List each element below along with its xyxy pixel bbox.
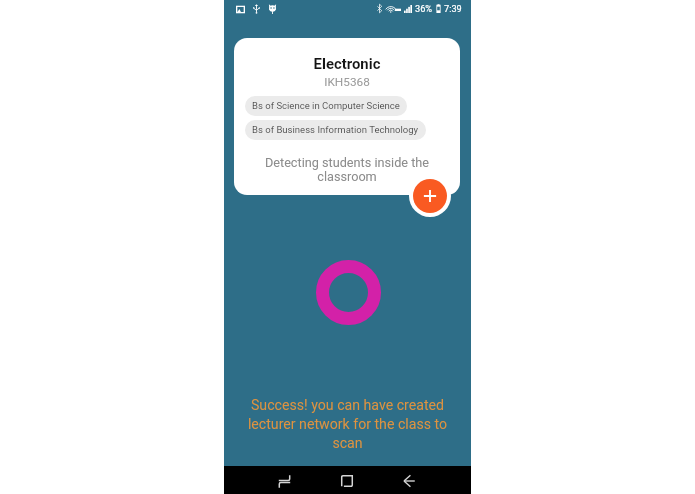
staticText: Detecting students inside the classroom [257, 155, 437, 185]
staticText: Bs of Business Information Technology [252, 124, 419, 135]
staticText: 7:39 [444, 3, 462, 14]
staticText: Bs of Science in Computer Science [252, 100, 400, 111]
staticText: IKH5368 [234, 75, 460, 89]
button[interactable]: Recents [270, 467, 298, 494]
staticText: Success! you can have created lecturer n… [238, 397, 457, 451]
button[interactable]: Home [333, 467, 361, 494]
button[interactable]: Bs of Science in Computer Science [245, 96, 407, 116]
staticText: Electronic [234, 55, 460, 72]
button[interactable]: Add [413, 179, 447, 213]
button[interactable]: Bs of Business Information Technology [245, 120, 426, 140]
button[interactable]: Back [395, 467, 423, 494]
staticText: 36% [415, 3, 433, 14]
